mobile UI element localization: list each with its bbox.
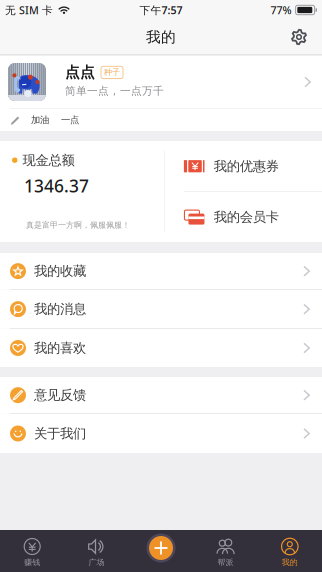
button[interactable]: 我的喜欢 [0,329,322,367]
staticText: 77% [271,3,292,17]
button[interactable]: 意见反馈 [0,377,322,413]
button[interactable]: 加油 [0,109,322,131]
button[interactable]: 我的收藏 [0,253,322,289]
staticText: 关于我们 [34,425,86,442]
staticText: 帮派 [217,557,233,567]
staticText: 赚钱 [24,557,40,567]
staticText: 下午7:57 [139,3,182,17]
staticText: 我的收藏 [34,263,86,279]
staticText: 我的会员卡 [214,209,279,225]
button[interactable]: 我的消息 [0,290,322,328]
button[interactable]: 帮派 [193,530,258,572]
staticText: 加油 [31,114,49,126]
staticText: 点点 [65,63,95,81]
staticText: 我的 [282,557,298,567]
button[interactable]: Add [145,532,177,564]
button[interactable]: 现金总额 [0,141,164,242]
staticText: 真是富甲一方啊，佩服佩服！ [26,220,130,230]
staticText: 意见反馈 [34,387,86,403]
button[interactable]: 关于我们 [0,414,322,453]
button[interactable]: Settings [282,20,316,54]
staticText: 我的优惠券 [214,158,279,174]
staticText: 我的消息 [34,301,86,317]
button[interactable]: 点点 [0,56,322,108]
staticText: 种子 [104,67,120,77]
button[interactable]: 广场 [64,530,129,572]
staticText: 现金总额 [22,152,74,168]
staticText: 简单一点，一点万千 [65,84,164,98]
staticText: 我的 [146,28,176,46]
button[interactable]: 我的 [258,530,322,572]
staticText: 我的喜欢 [34,340,86,356]
button[interactable]: 赚钱 [0,530,64,572]
button[interactable]: 我的会员卡 [165,192,322,242]
staticText: 一点 [61,114,79,126]
staticText: 广场 [89,557,105,567]
staticText: 1346.37 [24,174,89,197]
button[interactable]: 我的优惠券 [165,141,322,191]
staticText: 无 SIM 卡 [5,3,53,17]
